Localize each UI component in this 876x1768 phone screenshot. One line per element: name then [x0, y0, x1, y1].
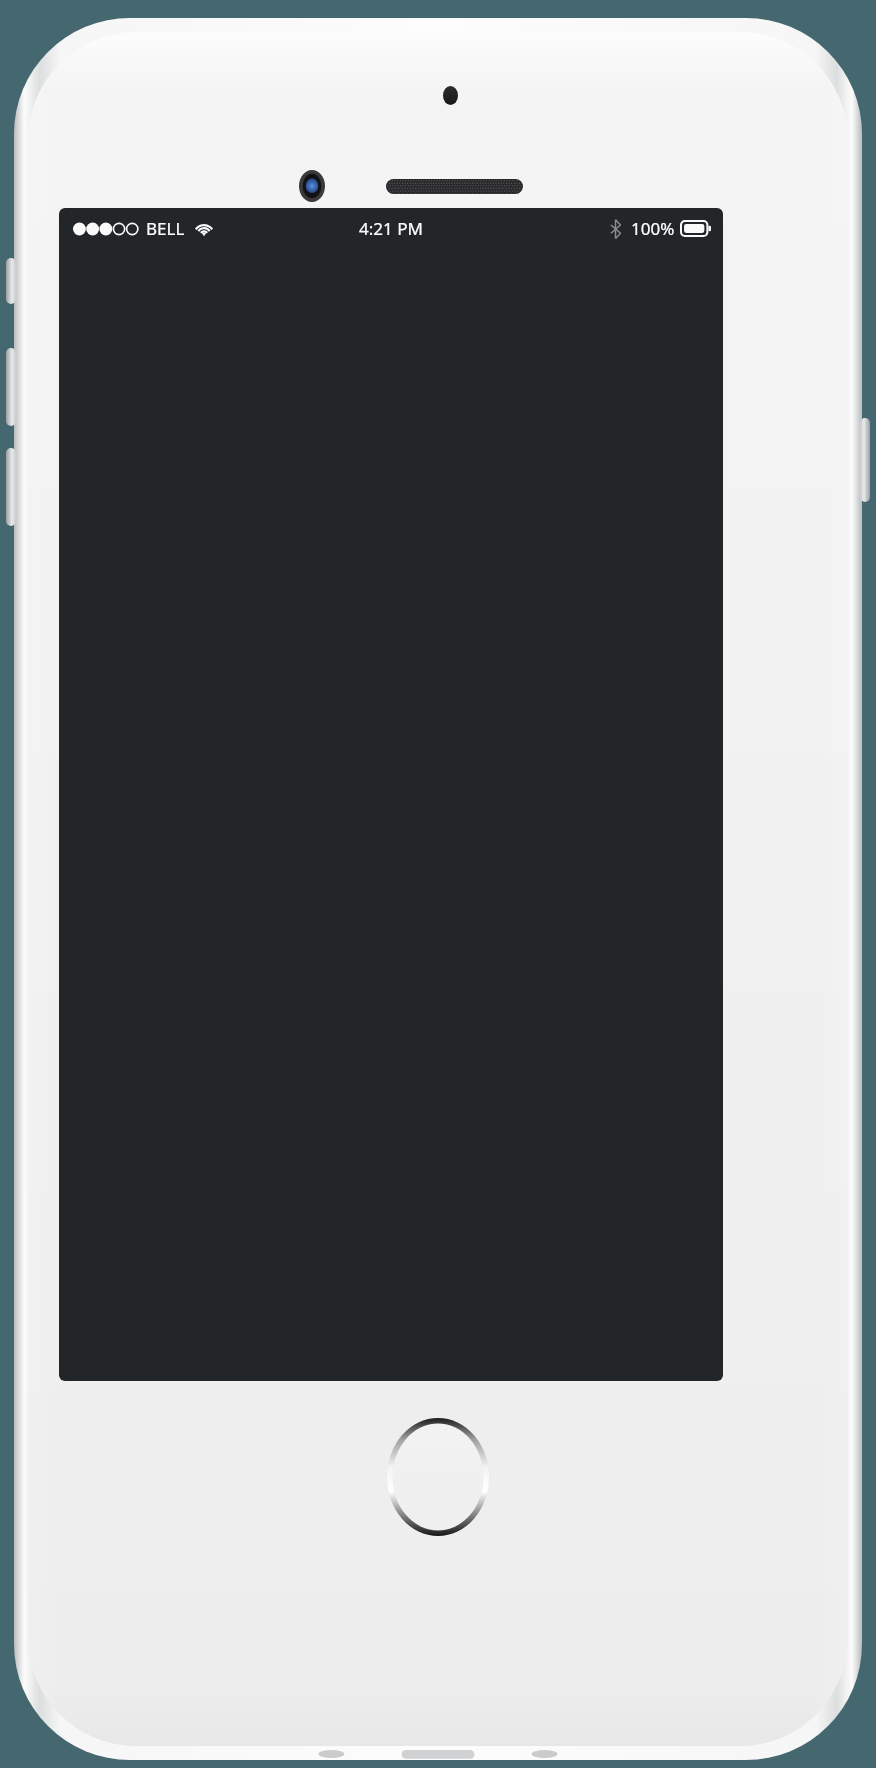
staticText: 100% [631, 217, 675, 240]
button[interactable]: 100% [610, 217, 711, 240]
staticText: BELL [146, 217, 185, 240]
button[interactable]: BELL [73, 217, 214, 240]
staticText: 4:21 PM [359, 217, 423, 240]
button[interactable]: Home [387, 1418, 489, 1536]
